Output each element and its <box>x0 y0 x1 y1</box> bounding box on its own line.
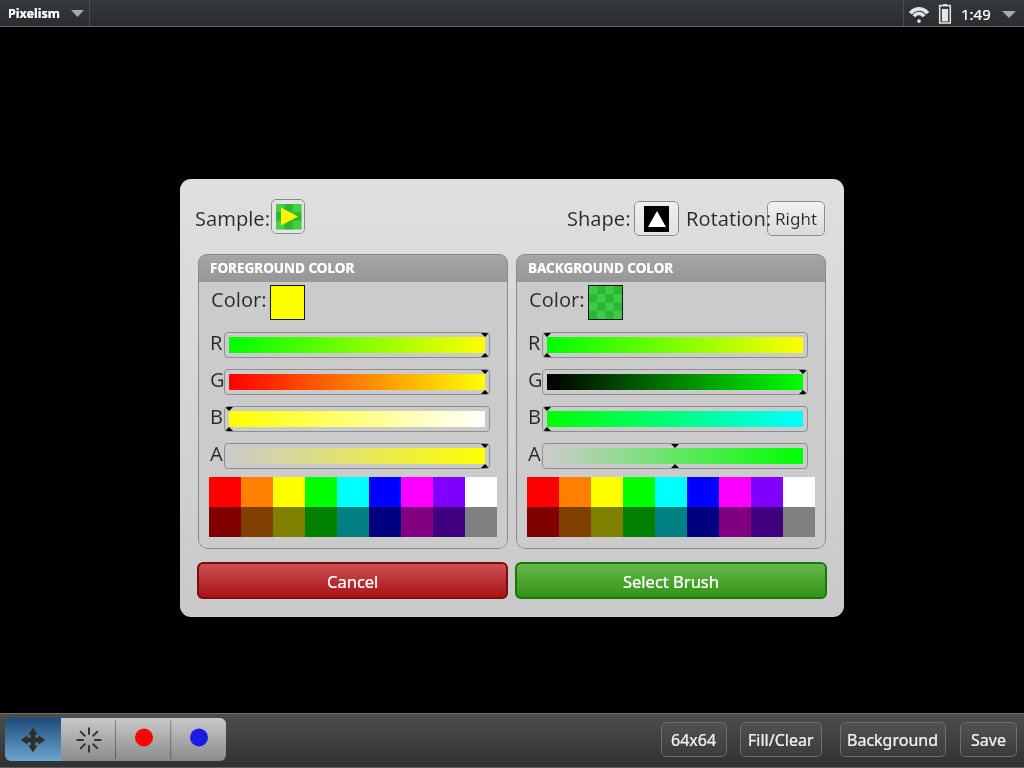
button[interactable]: Right <box>767 201 825 236</box>
button[interactable]: Blue colour <box>171 718 226 761</box>
staticText: Pixelism <box>8 5 60 22</box>
button[interactable]: G channel slider <box>542 369 808 395</box>
button[interactable]: Fill/Clear <box>740 722 822 757</box>
staticText: Cancel <box>327 570 379 592</box>
button[interactable]: Current colour <box>270 285 305 320</box>
other: Battery <box>939 4 951 23</box>
staticText: Save <box>971 729 1006 751</box>
button[interactable]: B channel slider <box>224 406 490 432</box>
button[interactable]: Move tool <box>5 718 61 761</box>
staticText: Shape: <box>567 205 631 232</box>
staticText: Sample: <box>195 205 270 232</box>
button[interactable]: Save <box>960 722 1017 757</box>
button[interactable]: Lighten tool <box>61 718 116 761</box>
other: Wifi <box>908 4 930 23</box>
staticText: R <box>210 329 223 355</box>
staticText: B <box>210 403 223 429</box>
button[interactable]: Red colour <box>116 718 171 761</box>
button[interactable]: Cancel <box>197 562 508 599</box>
button[interactable]: Shape <box>634 201 679 236</box>
staticText: Fill/Clear <box>748 729 814 751</box>
staticText: A <box>528 440 541 466</box>
staticText: Rotation: <box>686 205 772 232</box>
staticText: G <box>528 366 543 392</box>
staticText: Color: <box>529 286 585 313</box>
button[interactable]: G channel slider <box>224 369 490 395</box>
other: Expand notifications <box>1002 11 1016 18</box>
button[interactable]: 64x64 <box>661 722 727 757</box>
button[interactable]: B channel slider <box>542 406 808 432</box>
staticText: FOREGROUND COLOR <box>210 259 355 277</box>
staticText: 1:49 <box>961 4 991 24</box>
staticText: Right <box>775 207 818 230</box>
button[interactable]: Background <box>840 722 946 757</box>
button[interactable]: A channel slider <box>542 443 808 469</box>
staticText: Select Brush <box>623 570 719 592</box>
staticText: B <box>528 403 541 429</box>
button[interactable]: Select Brush <box>515 562 827 599</box>
staticText: BACKGROUND COLOR <box>528 259 674 277</box>
button[interactable]: R channel slider <box>224 332 490 358</box>
button[interactable]: R channel slider <box>542 332 808 358</box>
staticText: G <box>210 366 225 392</box>
staticText: 64x64 <box>671 729 717 751</box>
staticText: A <box>210 440 223 466</box>
button[interactable]: Current colour <box>588 285 623 320</box>
staticText: Color: <box>211 286 267 313</box>
button[interactable]: Pixelism <box>0 0 89 27</box>
staticText: R <box>528 329 541 355</box>
button[interactable]: Sample brush <box>271 199 305 234</box>
button[interactable]: A channel slider <box>224 443 490 469</box>
staticText: Background <box>847 729 939 751</box>
